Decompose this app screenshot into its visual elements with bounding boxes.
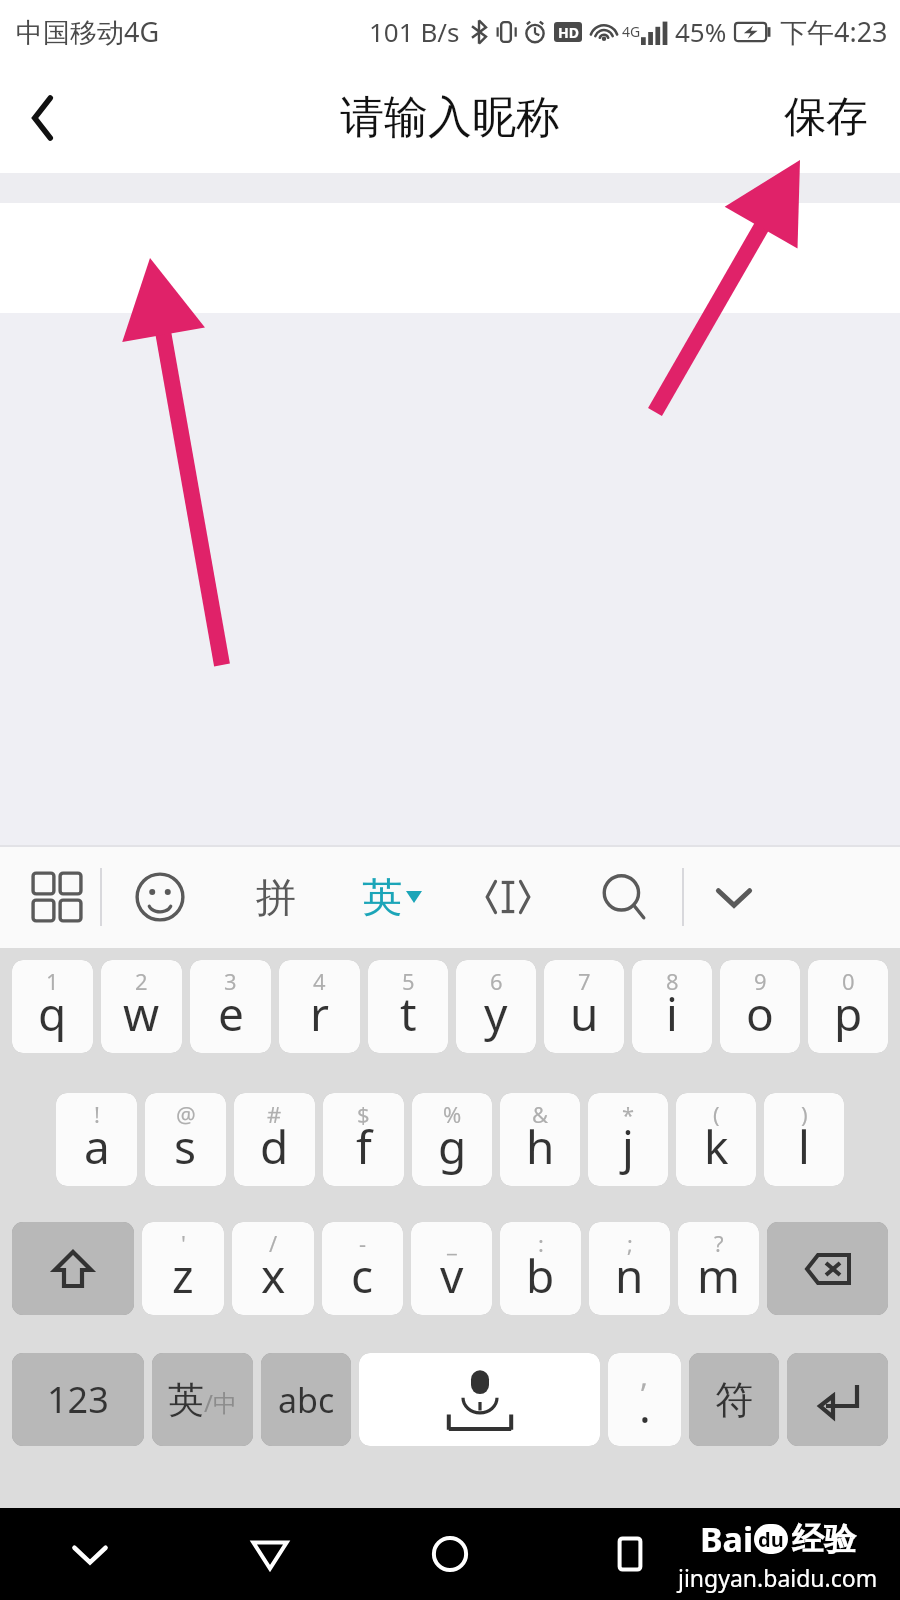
button[interactable]: '	[142, 1222, 224, 1315]
staticText: u	[570, 982, 599, 1045]
staticText: 5	[402, 966, 415, 996]
staticText: 123	[47, 1375, 109, 1424]
button[interactable]: !	[56, 1093, 137, 1186]
staticText: f	[356, 1115, 372, 1178]
button[interactable]: $	[323, 1093, 404, 1186]
button[interactable]: Keyboard layouts	[14, 845, 100, 948]
staticText: 4	[313, 966, 326, 996]
staticText: du	[758, 1526, 784, 1553]
button[interactable]: 6	[456, 960, 536, 1053]
staticText: j	[622, 1115, 634, 1178]
button[interactable]: Shift	[12, 1222, 134, 1315]
button[interactable]: @	[145, 1093, 226, 1186]
staticText: Bai	[700, 1516, 754, 1562]
button[interactable]: Recent apps	[540, 1508, 720, 1600]
button[interactable]: 符	[689, 1353, 779, 1446]
staticText: /	[269, 1228, 278, 1258]
staticText: jingyan.baidu.com	[678, 1562, 878, 1593]
staticText: abc	[278, 1377, 335, 1423]
staticText: l	[798, 1115, 810, 1178]
staticText: 2	[135, 966, 148, 996]
button[interactable]: 英	[334, 845, 450, 948]
staticText: )	[801, 1099, 808, 1129]
staticText: -	[359, 1228, 367, 1258]
button[interactable]: :	[500, 1222, 581, 1315]
staticText: v	[440, 1244, 464, 1307]
button[interactable]: Hide keyboard	[0, 1508, 180, 1600]
button[interactable]: Hide keyboard	[684, 845, 784, 948]
staticText: 英	[362, 872, 402, 922]
staticText: y	[484, 982, 508, 1045]
staticText: o	[746, 982, 774, 1045]
button[interactable]: 拼	[218, 845, 334, 948]
staticText: 101 B/s	[369, 14, 460, 49]
button[interactable]: Space, voice input	[359, 1353, 600, 1446]
button[interactable]: 0	[808, 960, 888, 1053]
staticText: 8	[666, 966, 679, 996]
button[interactable]: /	[232, 1222, 314, 1315]
button[interactable]: ?	[678, 1222, 759, 1315]
button[interactable]	[0, 203, 900, 313]
button[interactable]: 1	[12, 960, 93, 1053]
button[interactable]: ;	[589, 1222, 670, 1315]
staticText: t	[400, 982, 417, 1045]
button[interactable]: Back	[0, 70, 86, 166]
button[interactable]: 5	[368, 960, 448, 1053]
staticText: 英	[168, 1377, 204, 1422]
button[interactable]: 9	[720, 960, 800, 1053]
staticText: HD	[558, 23, 579, 42]
button[interactable]: -	[322, 1222, 403, 1315]
staticText: w	[123, 982, 160, 1045]
staticText: 0	[842, 966, 855, 996]
staticText: 符	[715, 1376, 753, 1424]
button[interactable]: %	[412, 1093, 492, 1186]
staticText: c	[351, 1244, 374, 1307]
staticText: ?	[714, 1228, 724, 1258]
button[interactable]: Back	[180, 1508, 360, 1600]
staticText: h	[526, 1115, 555, 1178]
button[interactable]: ,	[608, 1353, 681, 1446]
staticText: b	[526, 1244, 555, 1307]
button[interactable]: 4	[279, 960, 360, 1053]
staticText: 拼	[256, 872, 296, 922]
staticText: e	[218, 982, 244, 1045]
staticText: 4G	[622, 22, 641, 41]
button[interactable]: Search	[566, 845, 682, 948]
button[interactable]: #	[234, 1093, 315, 1186]
staticText: 中国移动4G	[16, 13, 160, 50]
staticText: '	[181, 1228, 186, 1258]
button[interactable]: 7	[544, 960, 624, 1053]
button[interactable]: 8	[632, 960, 712, 1053]
staticText: k	[704, 1115, 729, 1178]
staticText: 45%	[675, 14, 727, 49]
staticText: !	[94, 1099, 100, 1129]
staticText: #	[267, 1099, 282, 1129]
button[interactable]: )	[764, 1093, 844, 1186]
staticText: .	[639, 1376, 651, 1436]
staticText: 经验	[792, 1519, 856, 1559]
staticText: (	[713, 1099, 720, 1129]
button[interactable]: Emoji	[102, 845, 218, 948]
button[interactable]: 2	[101, 960, 182, 1053]
button[interactable]: _	[411, 1222, 492, 1315]
button[interactable]: 123	[12, 1353, 144, 1446]
button[interactable]: (	[676, 1093, 756, 1186]
button[interactable]: abc	[261, 1353, 351, 1446]
button[interactable]: Home	[360, 1508, 540, 1600]
staticText: i	[666, 982, 678, 1045]
button[interactable]: Cursor	[450, 845, 566, 948]
staticText: z	[172, 1244, 194, 1307]
button[interactable]: 英	[152, 1353, 253, 1446]
button[interactable]: Backspace	[767, 1222, 888, 1315]
staticText: _	[447, 1228, 457, 1258]
button[interactable]: *	[588, 1093, 668, 1186]
staticText: a	[84, 1115, 110, 1178]
staticText: :	[538, 1228, 544, 1258]
button[interactable]: 3	[190, 960, 271, 1053]
staticText: s	[174, 1115, 197, 1178]
button[interactable]: &	[500, 1093, 580, 1186]
staticText: ;	[627, 1228, 633, 1258]
staticText: n	[615, 1244, 644, 1307]
button[interactable]: 保存	[776, 81, 876, 154]
button[interactable]: Enter	[787, 1353, 888, 1446]
